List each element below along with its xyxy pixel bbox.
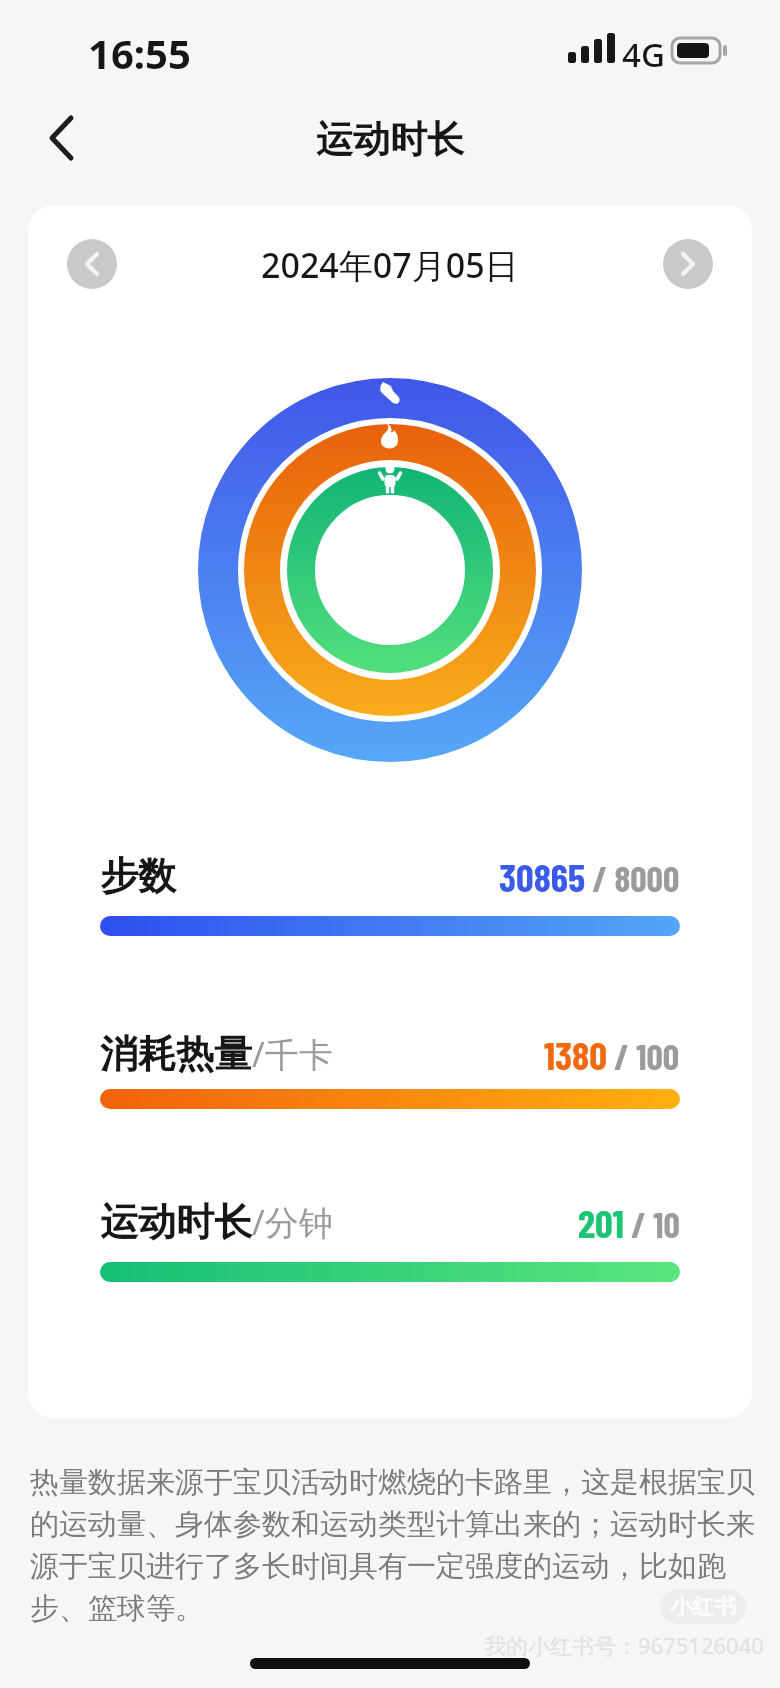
staticText: 4G bbox=[622, 32, 665, 77]
staticText: 30865 / 8000 bbox=[499, 853, 680, 900]
staticText: 热量数据来源于宝贝活动时燃烧的卡路里，这是根据宝贝 的运动量、身体参数和运动类型… bbox=[30, 1464, 755, 1627]
staticText: 消耗热量/千卡 bbox=[100, 1030, 333, 1078]
button[interactable] bbox=[34, 110, 90, 166]
button[interactable] bbox=[67, 239, 117, 289]
staticText: 运动时长 bbox=[316, 116, 464, 163]
staticText: 2024年07月05日 bbox=[261, 242, 519, 288]
staticText: 步数 bbox=[100, 852, 176, 900]
staticText: 我的小红书号：9675126040 bbox=[484, 1630, 764, 1660]
staticText: 运动时长/分钟 bbox=[100, 1198, 333, 1246]
staticText: 16:55 bbox=[88, 26, 191, 80]
staticText: 201 / 10 bbox=[578, 1199, 680, 1246]
staticText: 小红书 bbox=[670, 1593, 736, 1621]
staticText: 1380 / 100 bbox=[544, 1031, 680, 1078]
button[interactable] bbox=[663, 239, 713, 289]
